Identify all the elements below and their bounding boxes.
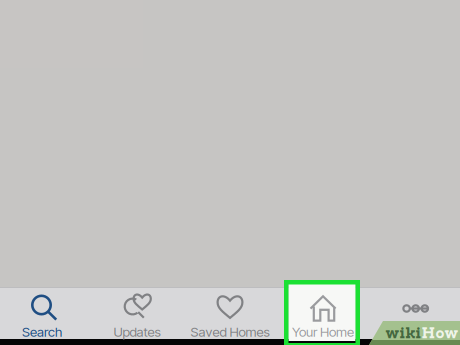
staticText: How — [421, 324, 458, 342]
button[interactable]: Saved Homes — [184, 287, 276, 339]
button[interactable]: More — [368, 287, 460, 339]
button[interactable]: Search — [0, 287, 88, 339]
staticText: Your Home — [292, 324, 354, 340]
button[interactable]: Your Home — [277, 287, 369, 339]
staticText: Search — [22, 324, 62, 340]
staticText: Updates — [113, 324, 160, 340]
staticText: wiki — [385, 324, 421, 342]
button[interactable]: Updates — [91, 287, 183, 339]
staticText: Saved Homes — [190, 324, 269, 340]
